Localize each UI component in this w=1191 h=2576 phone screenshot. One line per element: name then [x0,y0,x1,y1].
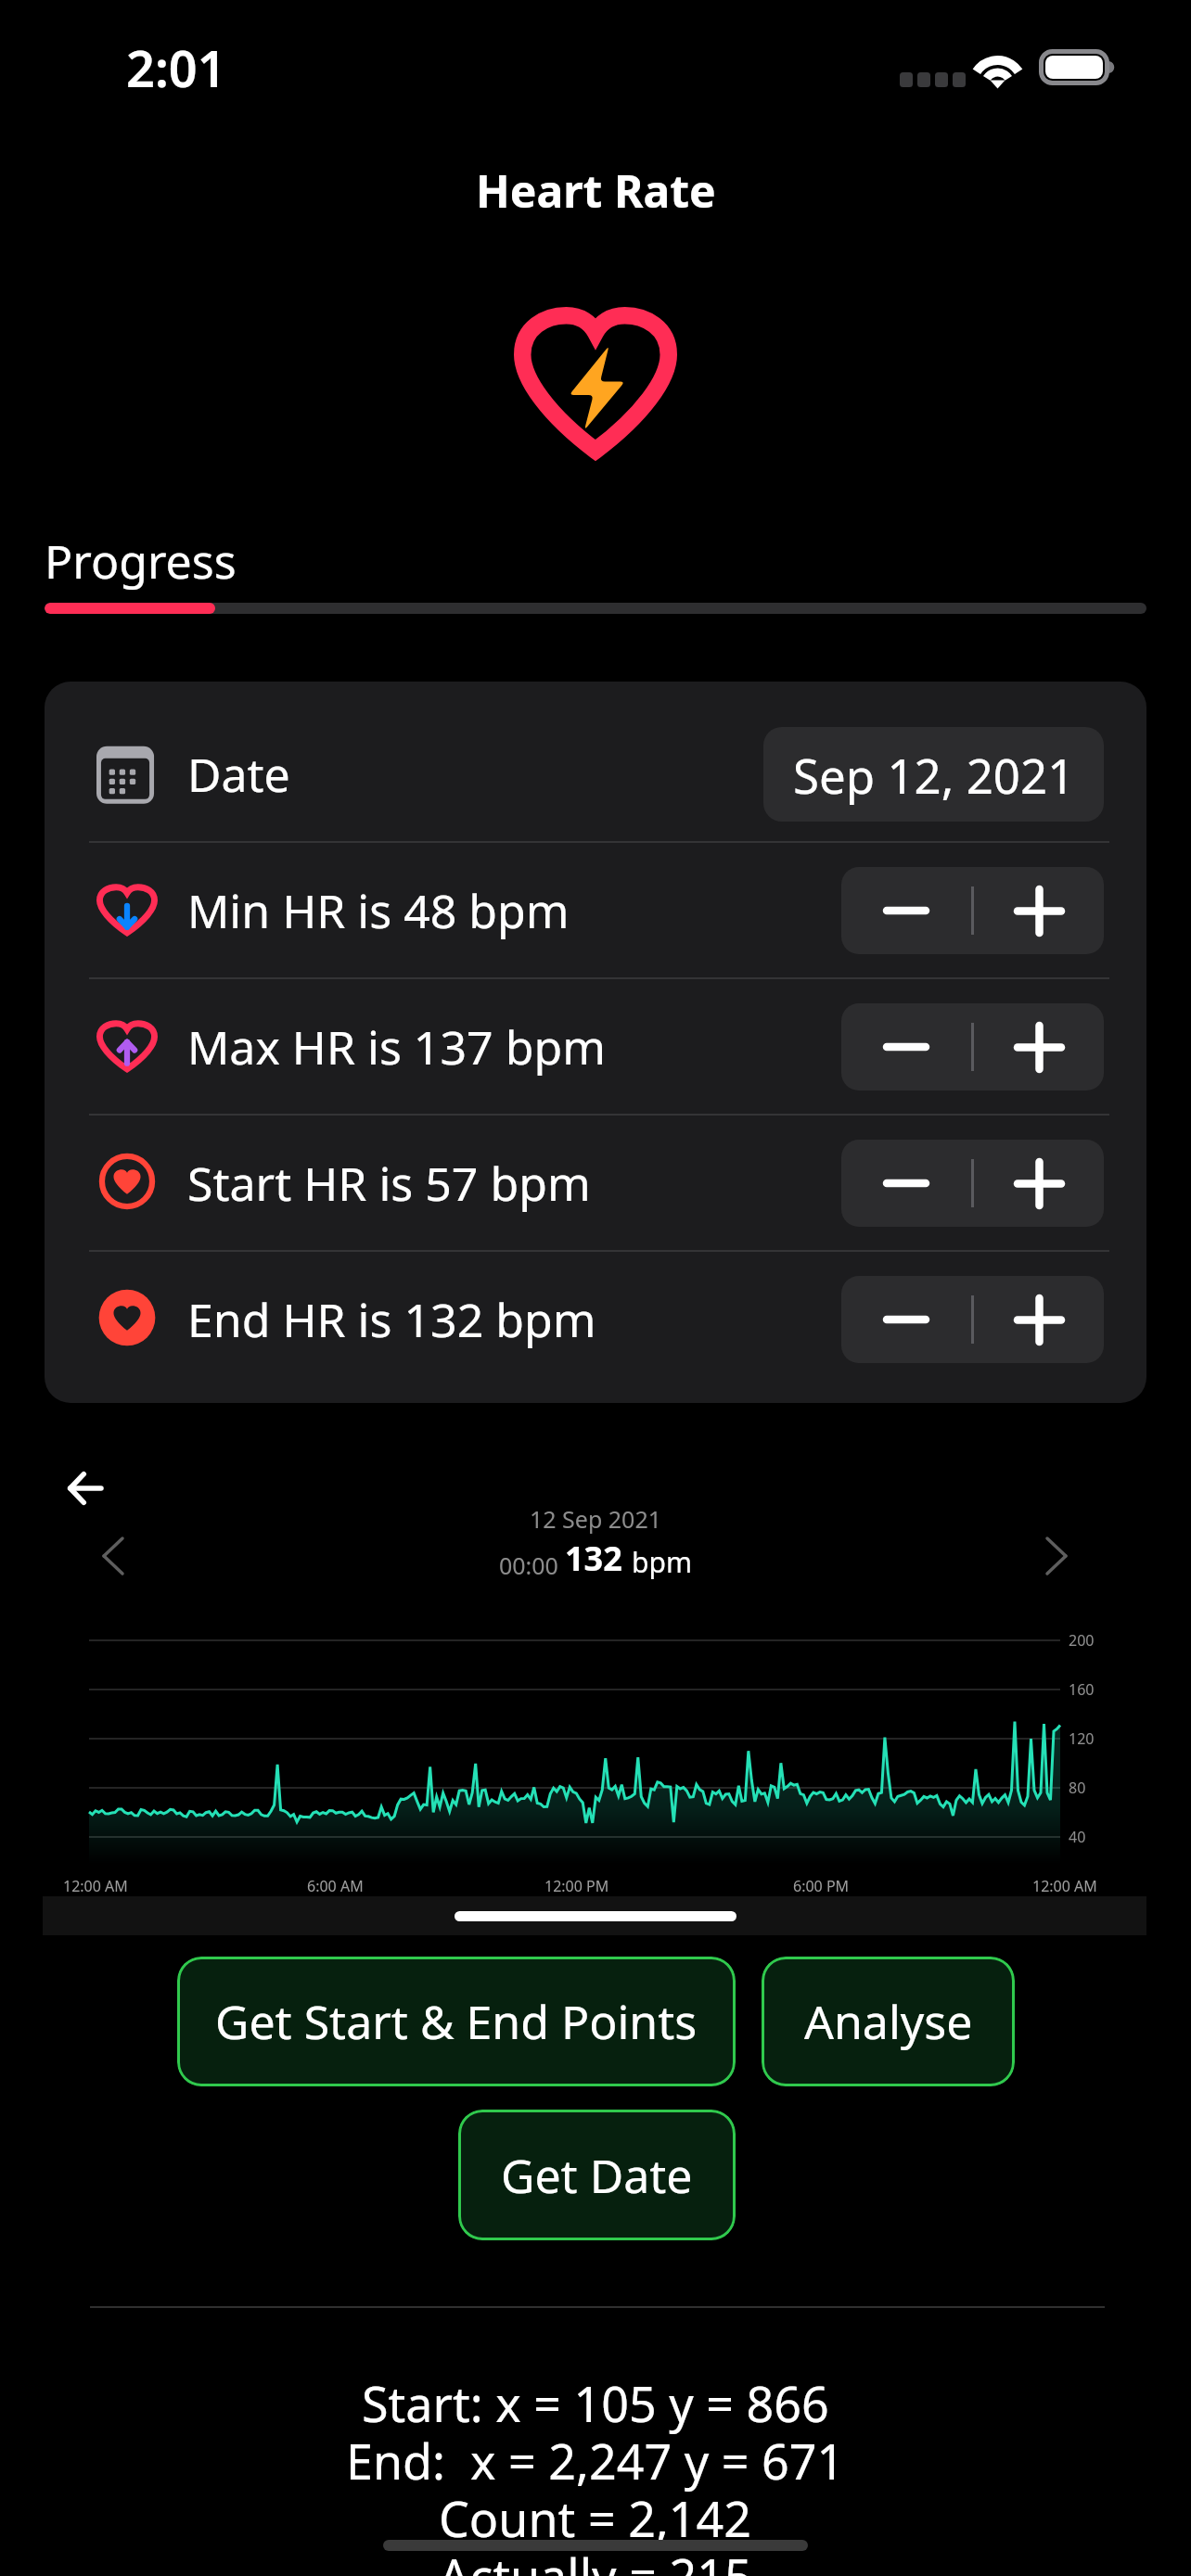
staticText: 6:00 AM [307,1876,364,1896]
button[interactable]: Date [45,707,1146,841]
staticText: 6:00 PM [793,1876,850,1896]
button[interactable]: Previous day [104,1538,122,1574]
button[interactable]: Sep 12, 2021 [763,727,1104,822]
staticText: Sep 12, 2021 [793,743,1075,807]
staticText: 200 [1069,1630,1095,1651]
button[interactable]: Decrease [841,867,971,954]
button[interactable]: Increase [974,1140,1104,1227]
staticText: End: x = 2,247 y = 671 [346,2428,845,2493]
staticText: Progress [45,529,237,593]
staticText: 12 Sep 2021 [530,1503,662,1535]
button[interactable]: Next day [1047,1538,1066,1574]
staticText: 132 [565,1536,632,1581]
staticText: Get Date [501,2144,693,2207]
staticText: Start: x = 105 y = 866 [362,2370,829,2436]
staticText: Min HR is 48 bpm [187,879,570,942]
staticText: 40 [1069,1827,1086,1847]
staticText: 12:00 AM [63,1876,128,1896]
staticText: Date [187,743,290,806]
staticText: 160 [1069,1679,1095,1700]
staticText: bpm [632,1543,692,1581]
staticText: Count = 2,142 [439,2485,752,2551]
staticText: 2:01 [126,33,226,102]
staticText: Heart Rate [476,160,716,221]
staticText: Get Start & End Points [215,1990,698,2053]
staticText: Actually = 215 [439,2543,752,2576]
button[interactable]: Start HR is 57 bpm [45,1116,1146,1250]
staticText: 120 [1069,1728,1095,1749]
staticText: Max HR is 137 bpm [187,1015,606,1078]
button[interactable]: Decrease [841,1140,971,1227]
button[interactable]: Max HR is 137 bpm [45,979,1146,1114]
button[interactable]: Decrease [841,1276,971,1363]
button[interactable]: End HR is 132 bpm [45,1252,1146,1386]
button[interactable]: Increase [974,867,1104,954]
staticText: 00:00 [499,1549,565,1581]
button[interactable]: Increase [974,1003,1104,1090]
button[interactable]: Get Start & End Points [177,1957,736,2086]
button[interactable]: Analyse [762,1957,1015,2086]
button[interactable]: Back [70,1473,101,1504]
staticText: Analyse [804,1990,973,2053]
button[interactable]: Decrease [841,1003,971,1090]
staticText: End HR is 132 bpm [187,1288,596,1351]
button[interactable]: Min HR is 48 bpm [45,843,1146,977]
staticText: 12:00 PM [544,1876,609,1896]
staticText: Start HR is 57 bpm [187,1152,591,1215]
staticText: 12:00 AM [1032,1876,1097,1896]
staticText: 80 [1069,1778,1086,1798]
button[interactable]: Get Date [458,2110,736,2240]
button[interactable]: Increase [974,1276,1104,1363]
